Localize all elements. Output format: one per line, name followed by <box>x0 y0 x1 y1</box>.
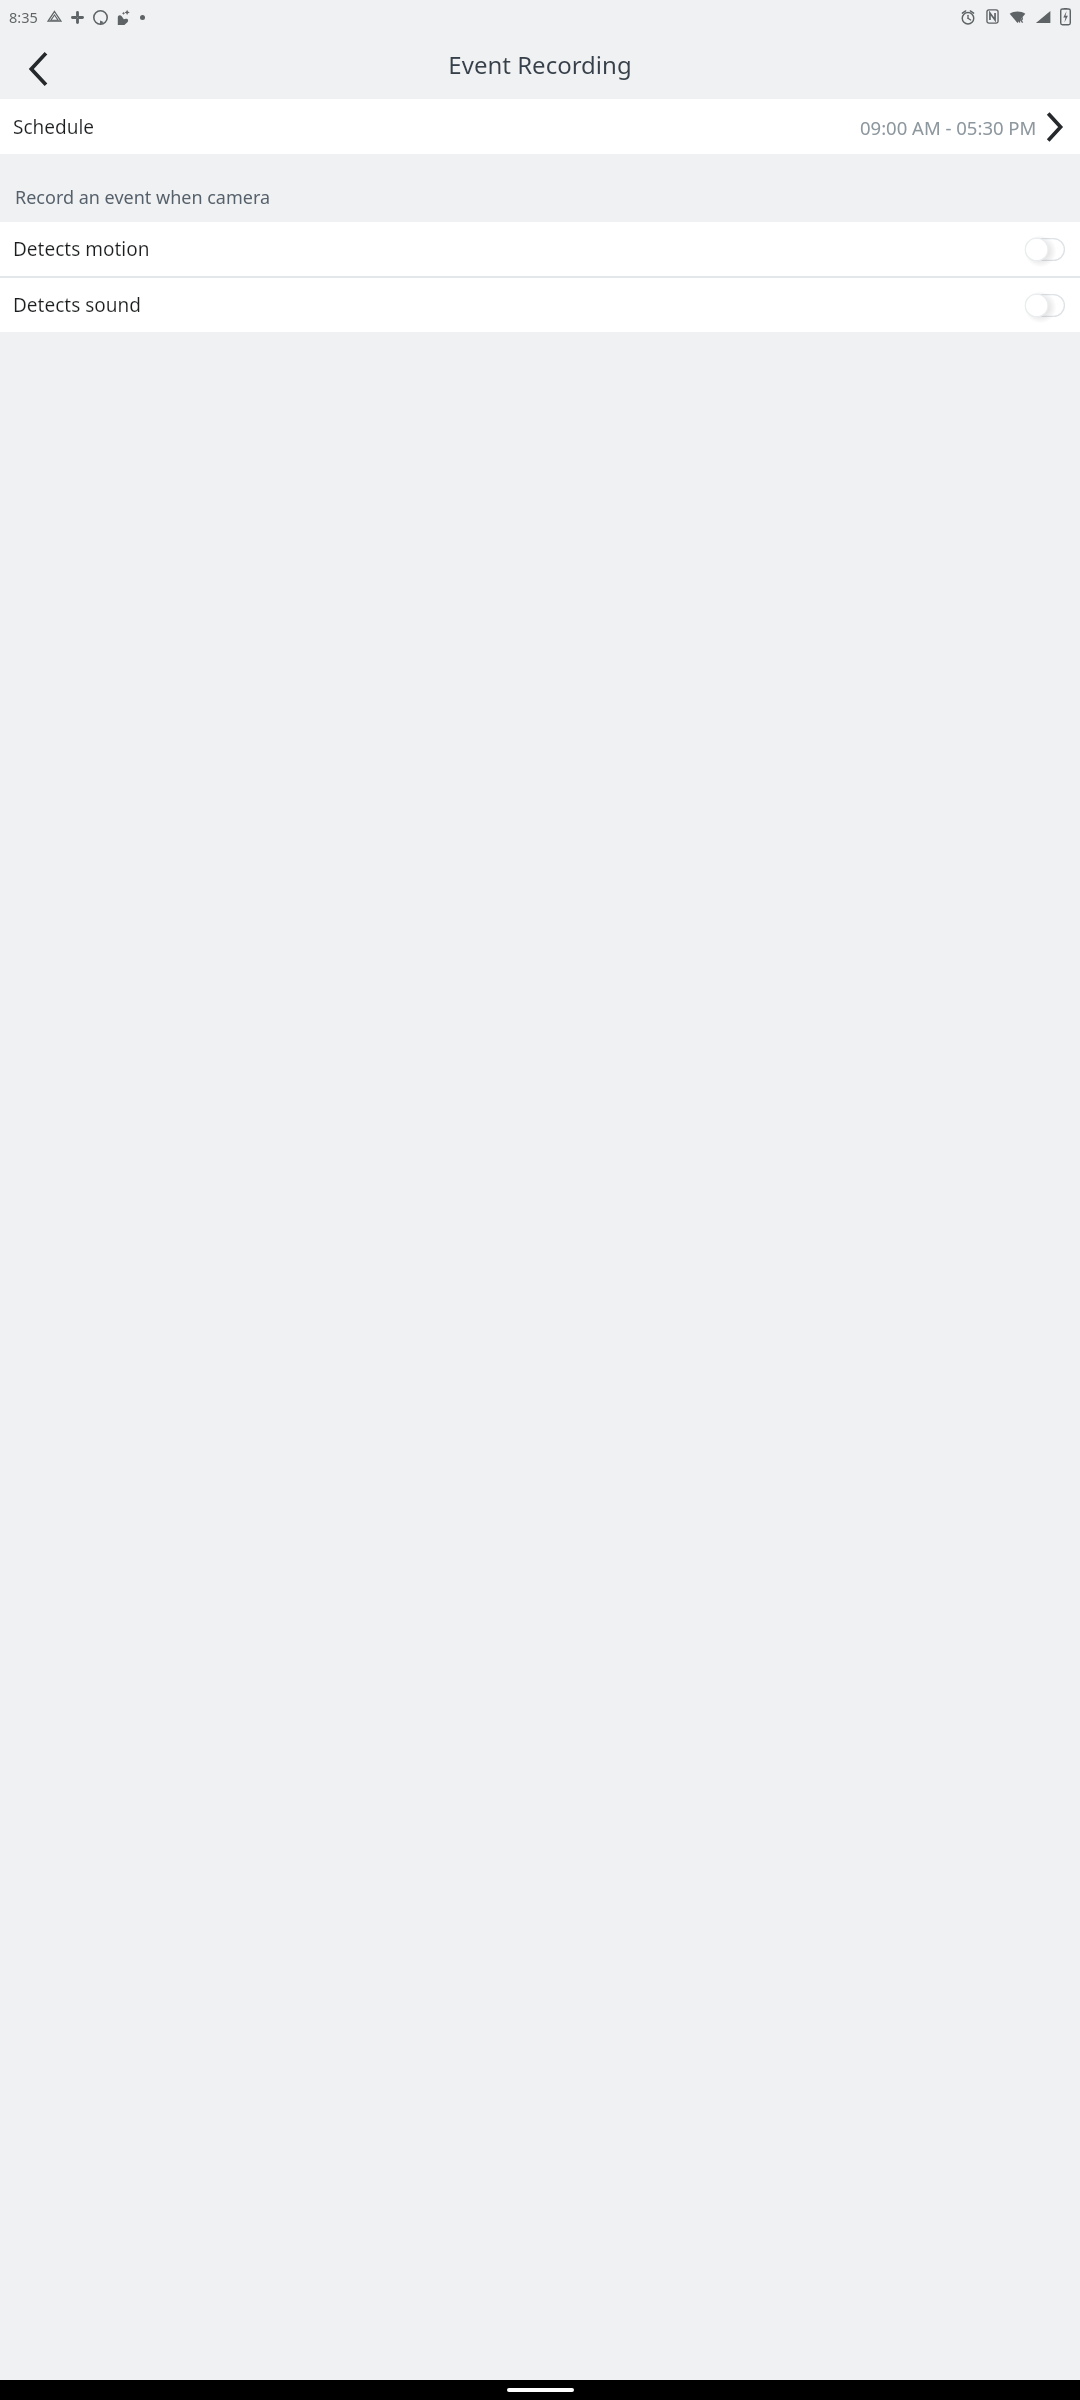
button[interactable]: Toggle off <box>1025 294 1065 317</box>
staticText: 8:35 <box>9 7 38 27</box>
button[interactable]: Toggle off <box>1025 238 1065 261</box>
button[interactable]: Detects motion <box>0 222 1080 276</box>
staticText: Record an event when camera <box>15 185 271 210</box>
button[interactable]: Detects sound <box>0 278 1080 332</box>
button[interactable]: Back <box>10 41 66 97</box>
staticText: Detects motion <box>13 236 150 262</box>
staticText: Event Recording <box>448 48 632 81</box>
button[interactable]: Schedule <box>0 99 1080 154</box>
staticText: Detects sound <box>13 292 141 318</box>
staticText: Schedule <box>13 114 95 140</box>
staticText: 09:00 AM - 05:30 PM <box>860 115 1037 140</box>
